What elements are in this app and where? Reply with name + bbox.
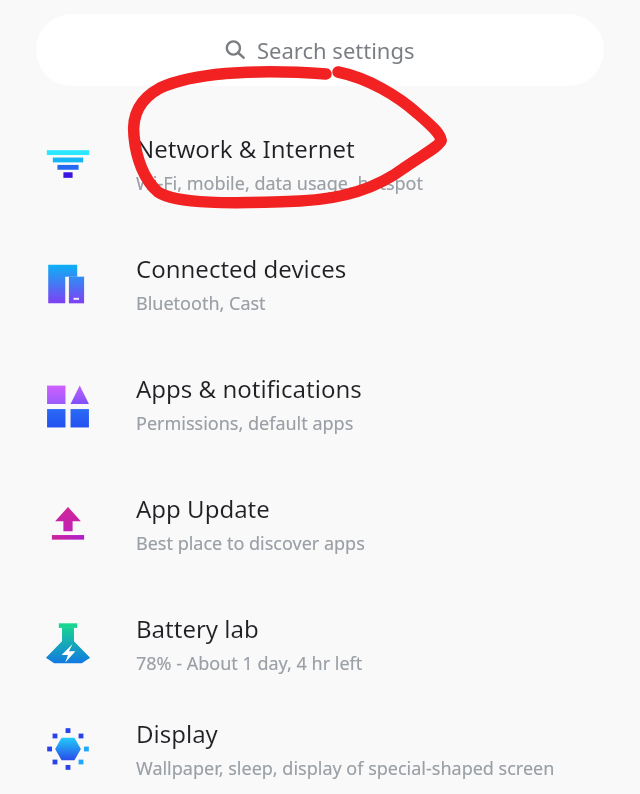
staticText: Connected devices — [136, 252, 347, 285]
staticText: Network & Internet — [136, 132, 355, 165]
button[interactable]: Battery lab — [0, 584, 640, 704]
staticText: Wallpaper, sleep, display of special-sha… — [136, 756, 555, 781]
button[interactable]: App Update — [0, 464, 640, 584]
staticText: Wi-Fi, mobile, data usage, hotspot — [136, 171, 424, 196]
button[interactable]: Apps & notifications — [0, 344, 640, 464]
staticText: Permissions, default apps — [136, 411, 354, 436]
staticText: Search settings — [257, 35, 415, 65]
other: Annotation highlighting Network & Intern… — [0, 0, 640, 794]
staticText: Apps & notifications — [136, 372, 362, 405]
staticText: App Update — [136, 492, 270, 525]
staticText: Bluetooth, Cast — [136, 291, 266, 316]
button[interactable]: Search settings — [36, 14, 604, 86]
button[interactable]: Network & Internet — [0, 104, 640, 224]
button[interactable]: Connected devices — [0, 224, 640, 344]
staticText: Display — [136, 717, 218, 750]
staticText: Battery lab — [136, 612, 259, 645]
staticText: 78% - About 1 day, 4 hr left — [136, 651, 363, 676]
staticText: Best place to discover apps — [136, 531, 365, 556]
button[interactable]: Display — [0, 704, 640, 794]
